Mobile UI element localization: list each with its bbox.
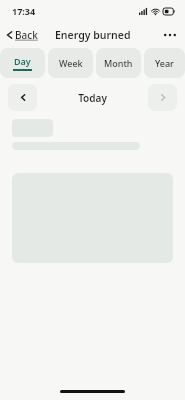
staticText: Week — [59, 57, 83, 69]
button[interactable]: Back — [0, 24, 44, 46]
staticText: Today — [78, 91, 107, 105]
button[interactable]: Next day — [148, 84, 177, 111]
button[interactable]: Week — [48, 48, 93, 78]
staticText: Month — [104, 57, 133, 69]
staticText: Back — [15, 28, 38, 42]
button[interactable]: Previous day — [8, 84, 37, 111]
button[interactable]: Day — [0, 48, 45, 78]
button[interactable]: Year — [144, 48, 185, 78]
staticText: Day — [14, 55, 31, 67]
staticText: 17:34 — [12, 5, 36, 17]
button[interactable]: Month — [96, 48, 141, 78]
button[interactable]: More options — [155, 27, 185, 43]
staticText: Year — [155, 57, 174, 69]
staticText: Energy burned — [55, 28, 131, 42]
